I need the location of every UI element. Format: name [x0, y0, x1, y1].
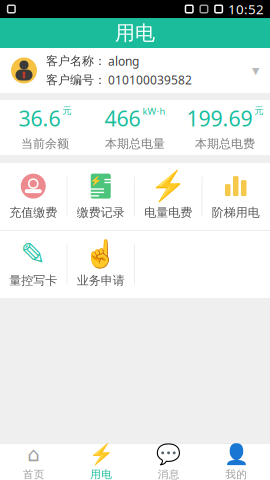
- staticText: 量控写卡: [9, 273, 57, 288]
- staticText: 👤: [224, 443, 249, 466]
- staticText: 电量电费: [144, 205, 192, 220]
- staticText: 缴费记录: [77, 205, 125, 220]
- staticText: 客户名称：: [46, 54, 106, 68]
- button[interactable]: 阶梯用电: [202, 163, 270, 230]
- staticText: 本期总电费: [195, 136, 255, 151]
- button[interactable]: 充值缴费: [0, 163, 67, 230]
- staticText: 我的: [225, 468, 247, 480]
- staticText: 36.6: [18, 104, 60, 132]
- staticText: 客户编号：: [46, 73, 106, 87]
- staticText: 本期总电量: [105, 136, 165, 151]
- staticText: 充值缴费: [9, 205, 57, 220]
- button[interactable]: ☝: [67, 231, 135, 298]
- staticText: ▾: [252, 62, 259, 79]
- button[interactable]: 💬: [135, 444, 202, 480]
- staticText: 阶梯用电: [212, 205, 260, 220]
- button[interactable]: ⚡: [135, 163, 202, 230]
- staticText: along: [108, 53, 139, 69]
- staticText: 💬: [156, 443, 181, 466]
- staticText: 199.69: [186, 104, 252, 132]
- staticText: 用电: [90, 468, 112, 480]
- staticText: ⚡: [89, 443, 114, 466]
- staticText: 当前余额: [21, 136, 69, 151]
- staticText: 466: [104, 104, 140, 132]
- button[interactable]: ⚡: [67, 163, 135, 230]
- button[interactable]: ⌂: [0, 444, 67, 480]
- staticText: 用电: [115, 21, 155, 45]
- button[interactable]: 客户名称：: [0, 48, 270, 93]
- button[interactable]: ⚡: [67, 444, 135, 480]
- staticText: ✎: [20, 237, 46, 271]
- staticText: 010100039582: [108, 72, 192, 88]
- button[interactable]: 👤: [202, 444, 270, 480]
- staticText: 首页: [23, 468, 45, 480]
- staticText: 消息: [158, 468, 180, 480]
- staticText: ⚡: [90, 176, 102, 186]
- staticText: 10:52: [228, 0, 264, 18]
- staticText: 业务申请: [77, 273, 125, 288]
- staticText: ☝: [84, 239, 117, 269]
- staticText: 元: [62, 105, 71, 116]
- button[interactable]: ✎: [0, 231, 67, 298]
- staticText: 元: [254, 105, 263, 116]
- staticText: ⌂: [27, 443, 40, 466]
- staticText: ⚡: [150, 169, 187, 203]
- staticText: kW·h: [142, 105, 165, 117]
